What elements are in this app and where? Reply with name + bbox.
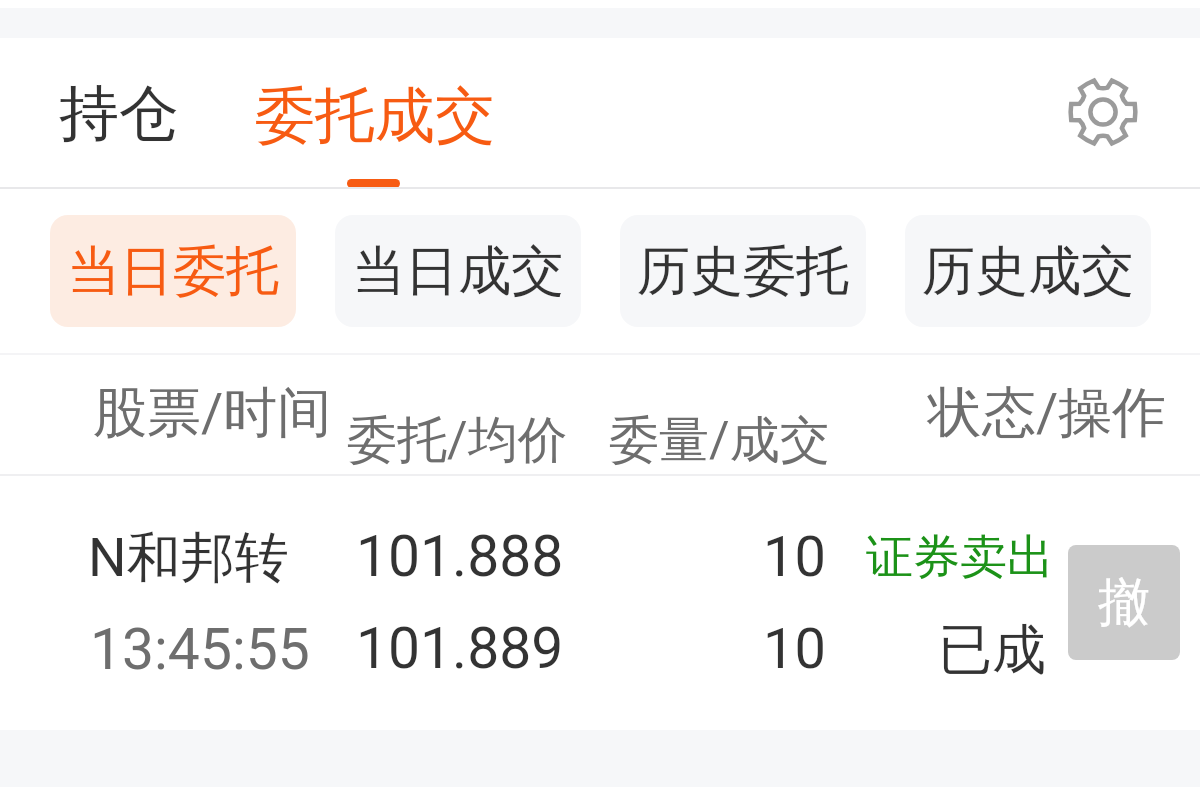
staticText: 历史委托 (637, 238, 849, 305)
button[interactable]: 历史委托 (620, 215, 866, 327)
staticText: 101.889 (356, 615, 564, 682)
staticText: N和邦转 (88, 524, 289, 592)
staticText: 13:45:55 (90, 616, 310, 683)
button[interactable]: 历史成交 (905, 215, 1151, 327)
staticText: 10 (763, 616, 826, 682)
staticText: 撤 (1098, 570, 1150, 636)
staticText: 委托成交 (255, 78, 495, 154)
staticText: 委量/成交 (609, 409, 830, 472)
staticText: 证券卖出 (866, 528, 1054, 587)
button[interactable]: 持仓 (33, 56, 205, 172)
button[interactable]: 当日成交 (335, 215, 581, 327)
staticText: 当日委托 (67, 238, 279, 305)
staticText: 委托/均价 (347, 409, 568, 472)
staticText: 已成 (938, 616, 1046, 684)
button[interactable]: Settings (1063, 72, 1143, 152)
staticText: 持仓 (59, 76, 179, 152)
button[interactable]: 撤 (1068, 545, 1180, 660)
staticText: 股票/时间 (93, 379, 332, 447)
button[interactable]: 委托成交 (229, 58, 521, 174)
staticText: 当日成交 (352, 238, 564, 305)
staticText: 10 (763, 524, 826, 590)
staticText: 状态/操作 (928, 379, 1167, 447)
button[interactable]: N和邦转 (0, 475, 1200, 730)
staticText: 历史成交 (922, 238, 1134, 305)
staticText: 101.888 (356, 523, 564, 590)
button[interactable]: 当日委托 (50, 215, 296, 327)
